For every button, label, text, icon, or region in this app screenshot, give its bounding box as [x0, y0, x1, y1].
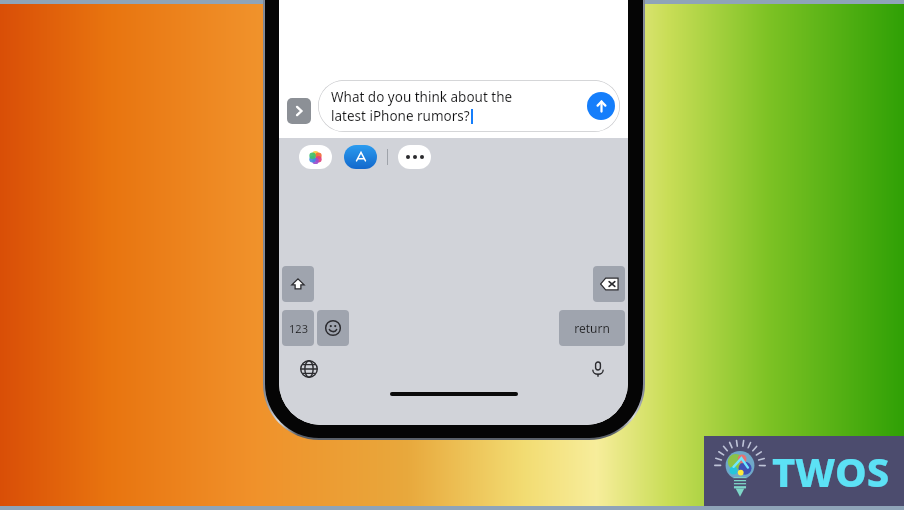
button[interactable]: 123 [282, 310, 314, 346]
button[interactable]: Dictate [584, 355, 612, 383]
staticText: 123 [289, 321, 308, 336]
button[interactable]: App Store [344, 145, 377, 169]
button[interactable]: TWOS logo [704, 436, 904, 506]
button[interactable]: Change keyboard [295, 355, 323, 383]
button[interactable]: Shift [282, 266, 314, 302]
button[interactable]: Send [587, 92, 615, 120]
button[interactable]: Backspace [593, 266, 625, 302]
staticText: latest iPhone rumors? [331, 107, 470, 125]
staticText: What do you think about the [331, 88, 513, 106]
button[interactable]: More apps [398, 145, 431, 169]
button[interactable]: Expand apps [287, 98, 311, 124]
staticText: return [574, 320, 610, 336]
staticText: TWOS [772, 444, 890, 498]
button[interactable]: Emoji [317, 310, 349, 346]
button[interactable]: What do you think about the [318, 80, 620, 132]
button[interactable]: Photos [299, 145, 332, 169]
button[interactable]: return [559, 310, 625, 346]
